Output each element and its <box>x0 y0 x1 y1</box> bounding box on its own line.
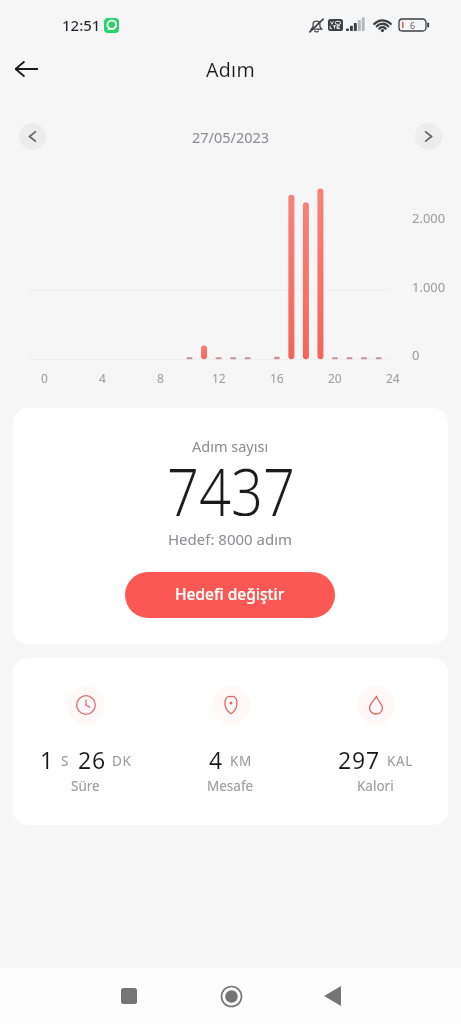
button[interactable]: Recents <box>105 972 153 1020</box>
staticText: Hedef: 8000 adım <box>168 529 293 549</box>
staticText: Süre <box>71 777 100 795</box>
staticText: 12 <box>212 370 226 386</box>
staticText: 16 <box>270 370 284 386</box>
staticText: 297 <box>338 744 380 772</box>
staticText: 1 <box>40 744 54 772</box>
staticText: 24 <box>386 370 400 386</box>
button[interactable]: Next day <box>415 123 442 150</box>
staticText: S <box>61 752 70 770</box>
staticText: 20 <box>328 370 342 386</box>
staticText: 7437 <box>167 446 295 516</box>
staticText: Adım <box>206 56 255 82</box>
staticText: 0 <box>412 346 420 364</box>
button[interactable]: Back <box>3 46 49 92</box>
button[interactable]: Hedefi değiştir <box>125 572 335 618</box>
staticText: 6 <box>410 19 416 31</box>
staticText: 27/05/2023 <box>192 127 270 147</box>
staticText: 12:51 <box>62 15 101 35</box>
button[interactable]: Home <box>207 972 255 1020</box>
staticText: 4 <box>209 744 223 772</box>
staticText: KM <box>230 752 252 770</box>
staticText: 0 <box>41 370 48 386</box>
staticText: Adım sayısı <box>192 436 269 456</box>
staticText: DK <box>112 752 132 770</box>
staticText: Mesafe <box>207 777 254 795</box>
button[interactable]: Previous day <box>19 123 46 150</box>
staticText: 26 <box>78 744 106 772</box>
button[interactable]: Back <box>308 972 356 1020</box>
staticText: KAL <box>387 752 413 770</box>
staticText: Hedefi değiştir <box>175 583 285 604</box>
staticText: 4 <box>99 370 106 386</box>
staticText: Kalori <box>357 777 394 795</box>
staticText: 8 <box>157 370 164 386</box>
staticText: 1.000 <box>412 278 446 296</box>
staticText: 2.000 <box>412 209 446 227</box>
